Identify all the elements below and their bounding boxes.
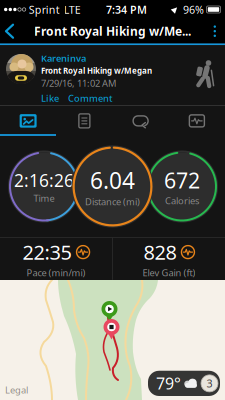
button[interactable]: Comment [68, 92, 113, 104]
button[interactable]: Details [56, 106, 112, 136]
staticText: LTE [64, 2, 81, 17]
staticText: 96% [183, 2, 204, 17]
staticText: 672 [164, 166, 200, 194]
staticText: Calories [165, 194, 199, 207]
staticText: 7:34 PM [106, 2, 147, 17]
staticText: Like [41, 92, 59, 104]
staticText: 828 [143, 239, 176, 265]
button[interactable]: Like [41, 92, 59, 104]
button[interactable]: Laps [112, 106, 169, 136]
button[interactable]: Back [0, 20, 21, 43]
staticText: Kareninva [41, 52, 86, 64]
button[interactable]: More options [205, 20, 225, 42]
staticText: 79° [156, 373, 181, 394]
button[interactable]: Weather, 79 degrees [148, 371, 220, 396]
staticText: Front Royal Hiking w/Me... [34, 23, 191, 39]
staticText: 22:35 [22, 239, 71, 265]
staticText: 6.04 [90, 165, 135, 195]
staticText: Elev Gain (ft) [142, 266, 195, 279]
staticText: 3 [206, 376, 212, 390]
button[interactable]: Summary [0, 106, 56, 136]
button[interactable]: Heart rate [169, 106, 225, 136]
staticText: Distance (mi) [85, 195, 140, 208]
staticText: Time [33, 192, 54, 204]
staticText: 2:16:26 [14, 169, 74, 192]
staticText: Front Royal Hiking w/Megan [41, 65, 152, 76]
staticText: Sprint [29, 2, 60, 17]
staticText: Pace (min/mi) [26, 266, 85, 279]
staticText: 7/29/16, 11:02 AM [41, 77, 116, 89]
staticText: Legal [5, 384, 28, 396]
staticText: Comment [68, 92, 113, 104]
